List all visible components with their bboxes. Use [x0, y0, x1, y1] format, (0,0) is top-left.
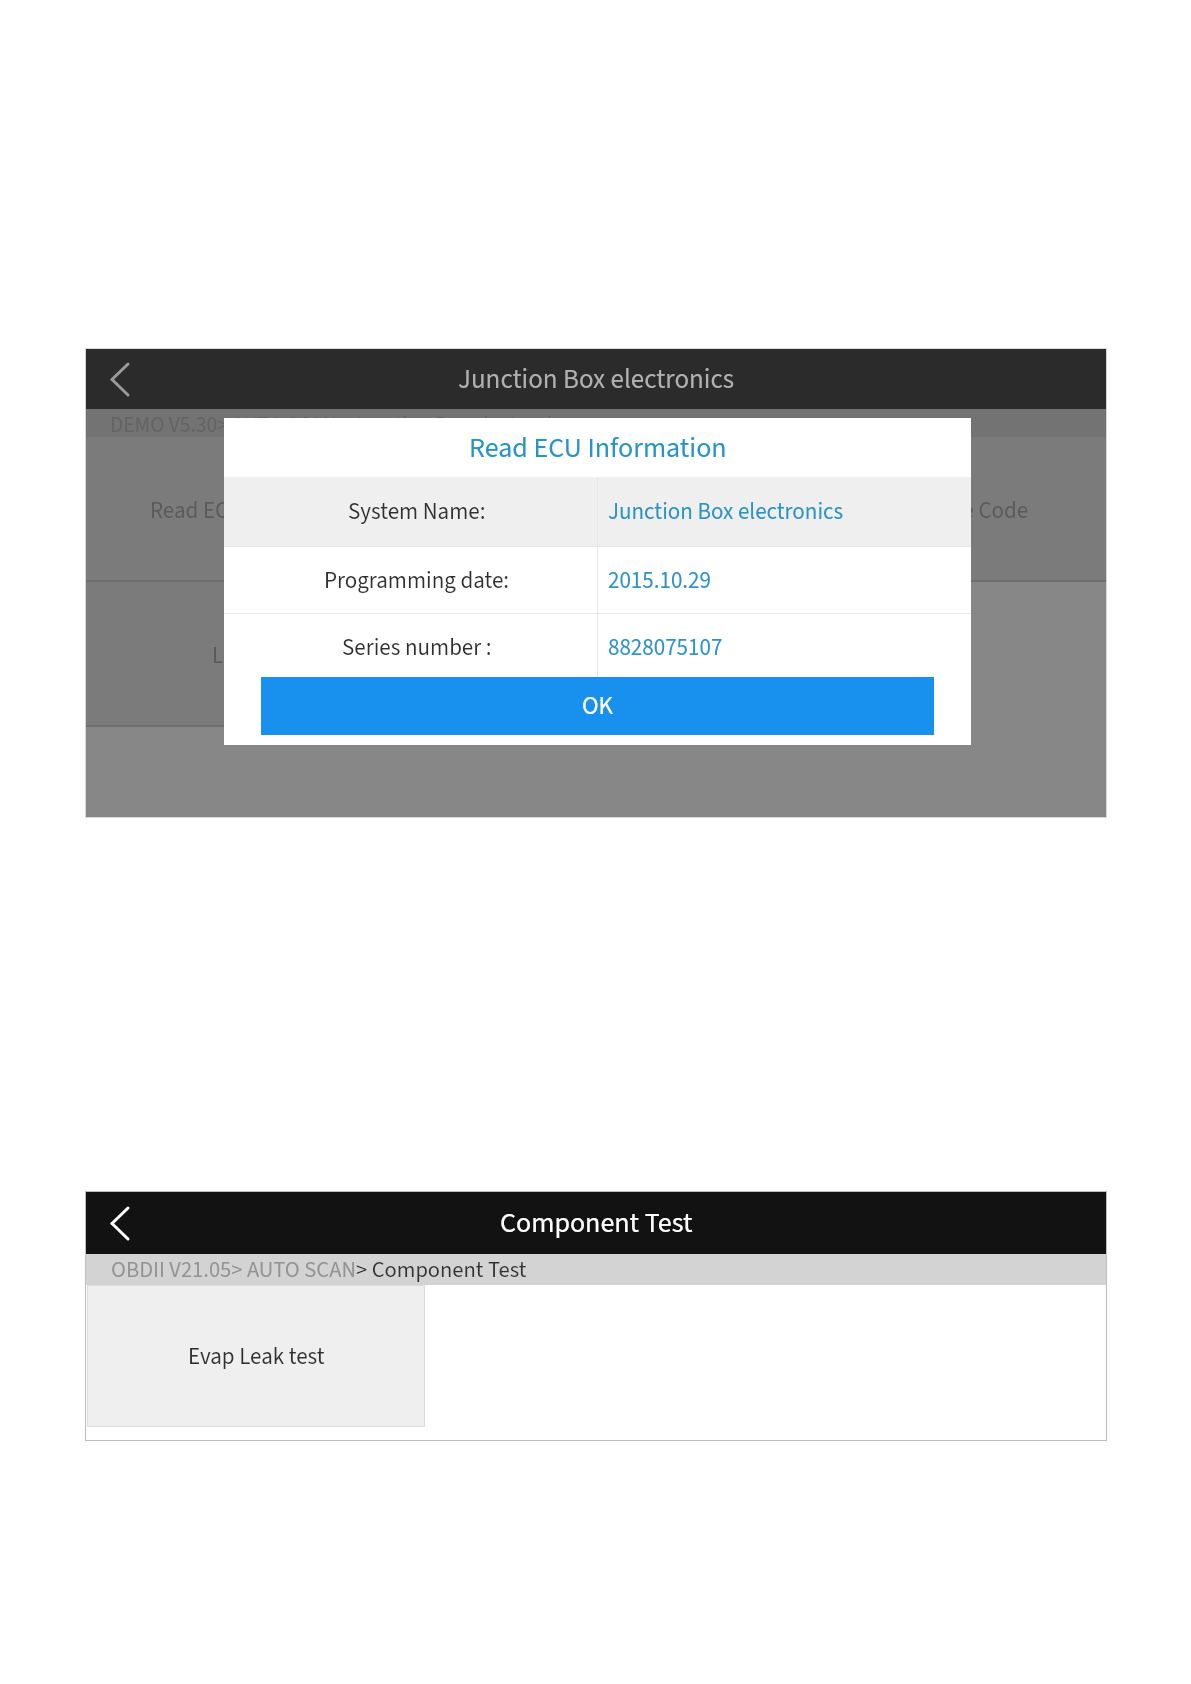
staticText: Read ECU information	[150, 494, 362, 527]
button[interactable]: Actuation Test	[426, 582, 766, 727]
staticText: > Component Test	[356, 1254, 527, 1285]
button[interactable]: Erase Trouble Code	[766, 437, 1106, 582]
staticText: 2015.10.29	[608, 564, 711, 597]
button[interactable]: OK	[261, 677, 934, 735]
staticText: Series number :	[342, 631, 492, 664]
button[interactable]: Back	[94, 353, 146, 405]
button[interactable]: Live Data	[86, 582, 426, 727]
staticText: DEMO V5.30> AUTO SCAN> Junction Box elec…	[110, 410, 572, 438]
staticText: Component Test	[500, 1203, 693, 1243]
button[interactable]: Back	[94, 1197, 146, 1249]
staticText: Evap Leak test	[188, 1340, 325, 1373]
staticText: Junction Box electronics	[458, 360, 735, 398]
staticText: Programming date:	[324, 564, 510, 597]
staticText: Live Data	[212, 639, 300, 672]
staticText: Junction Box electronics	[608, 495, 844, 528]
staticText: 8828075107	[608, 631, 723, 664]
staticText: Read ECU Information	[469, 428, 727, 468]
staticText: Read Fault Code	[518, 494, 674, 527]
staticText: Actuation Test	[528, 639, 665, 672]
button[interactable]: Read Fault Code	[426, 437, 766, 582]
button[interactable]: Evap Leak test	[87, 1285, 425, 1427]
button[interactable]: Read ECU information	[86, 437, 426, 582]
staticText: OK	[582, 688, 614, 724]
staticText: OBDII V21.05> AUTO SCAN	[111, 1254, 356, 1285]
staticText: Erase Trouble Code	[843, 494, 1029, 527]
staticText: System Name:	[348, 495, 486, 528]
